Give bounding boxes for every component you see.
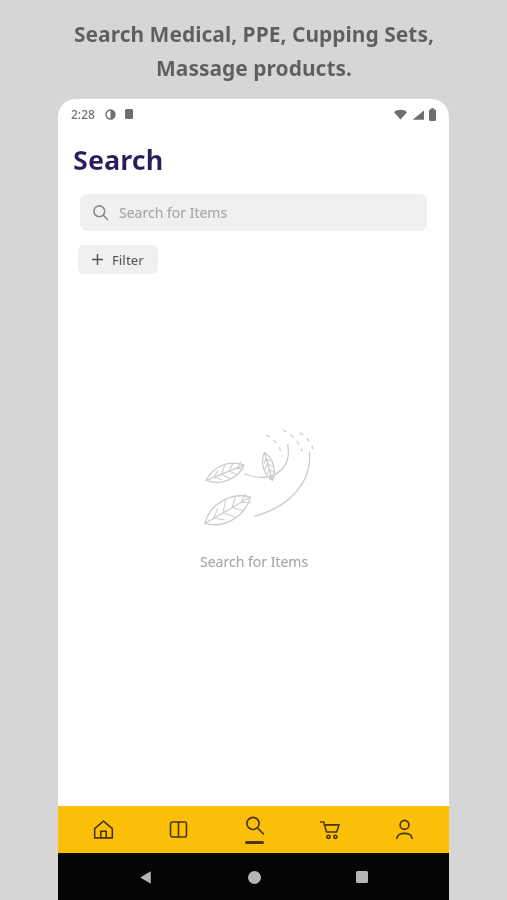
button[interactable]: Home (73, 806, 133, 853)
button[interactable]: Filter (78, 245, 158, 274)
button[interactable]: Cart (299, 806, 359, 853)
button[interactable]: Back (123, 855, 167, 899)
staticText: Search (73, 141, 164, 178)
staticText: Search for Items (200, 552, 309, 571)
staticText: Massage products. (156, 54, 352, 83)
button[interactable]: Home (232, 855, 276, 899)
staticText: Search Medical, PPE, Cupping Sets, (74, 20, 434, 49)
staticText: Filter (112, 251, 144, 269)
button[interactable]: Search for Items (80, 194, 427, 231)
button[interactable]: Catalog (148, 806, 208, 853)
staticText: Search for Items (119, 203, 228, 222)
button[interactable]: Recent apps (340, 855, 384, 899)
button[interactable]: Account (374, 806, 434, 853)
button[interactable]: Search (224, 806, 284, 853)
staticText: 2:28 (71, 106, 95, 122)
